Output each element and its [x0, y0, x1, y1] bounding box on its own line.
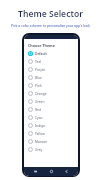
staticText: Default	[35, 51, 47, 55]
staticText: Grey	[35, 147, 43, 151]
button[interactable]: Orange	[28, 89, 74, 97]
button[interactable]: Blue	[28, 73, 74, 81]
staticText: Green	[35, 99, 45, 103]
button[interactable]: Default	[28, 49, 74, 57]
staticText: Theme Selector	[18, 8, 83, 20]
button[interactable]: Pink	[28, 81, 74, 89]
button[interactable]: Purple	[28, 65, 74, 73]
staticText: Purple	[35, 67, 46, 71]
staticText: Indigo	[35, 123, 46, 127]
staticText: Red	[35, 107, 41, 111]
button[interactable]: Recent apps	[31, 167, 40, 176]
button[interactable]: Yellow	[28, 129, 74, 137]
staticText: Cyan	[35, 115, 43, 119]
button[interactable]: Maroon	[28, 137, 74, 145]
staticText: Pick a color scheme to personalize your …	[11, 23, 90, 27]
button[interactable]: Home	[47, 167, 56, 176]
staticText: Yellow	[35, 131, 45, 135]
staticText: Orange	[35, 91, 47, 95]
staticText: Teal	[35, 59, 42, 63]
button[interactable]: Grey	[28, 145, 74, 153]
button[interactable]: Cyan	[28, 113, 74, 121]
staticText: Choose Theme	[28, 43, 55, 48]
button[interactable]: Back	[62, 167, 71, 176]
staticText: Pink	[35, 83, 42, 87]
staticText: Blue	[35, 75, 42, 79]
button[interactable]: Red	[28, 105, 74, 113]
button[interactable]: Indigo	[28, 121, 74, 129]
button[interactable]: Teal	[28, 57, 74, 65]
staticText: Maroon	[35, 139, 48, 143]
button[interactable]: Green	[28, 97, 74, 105]
